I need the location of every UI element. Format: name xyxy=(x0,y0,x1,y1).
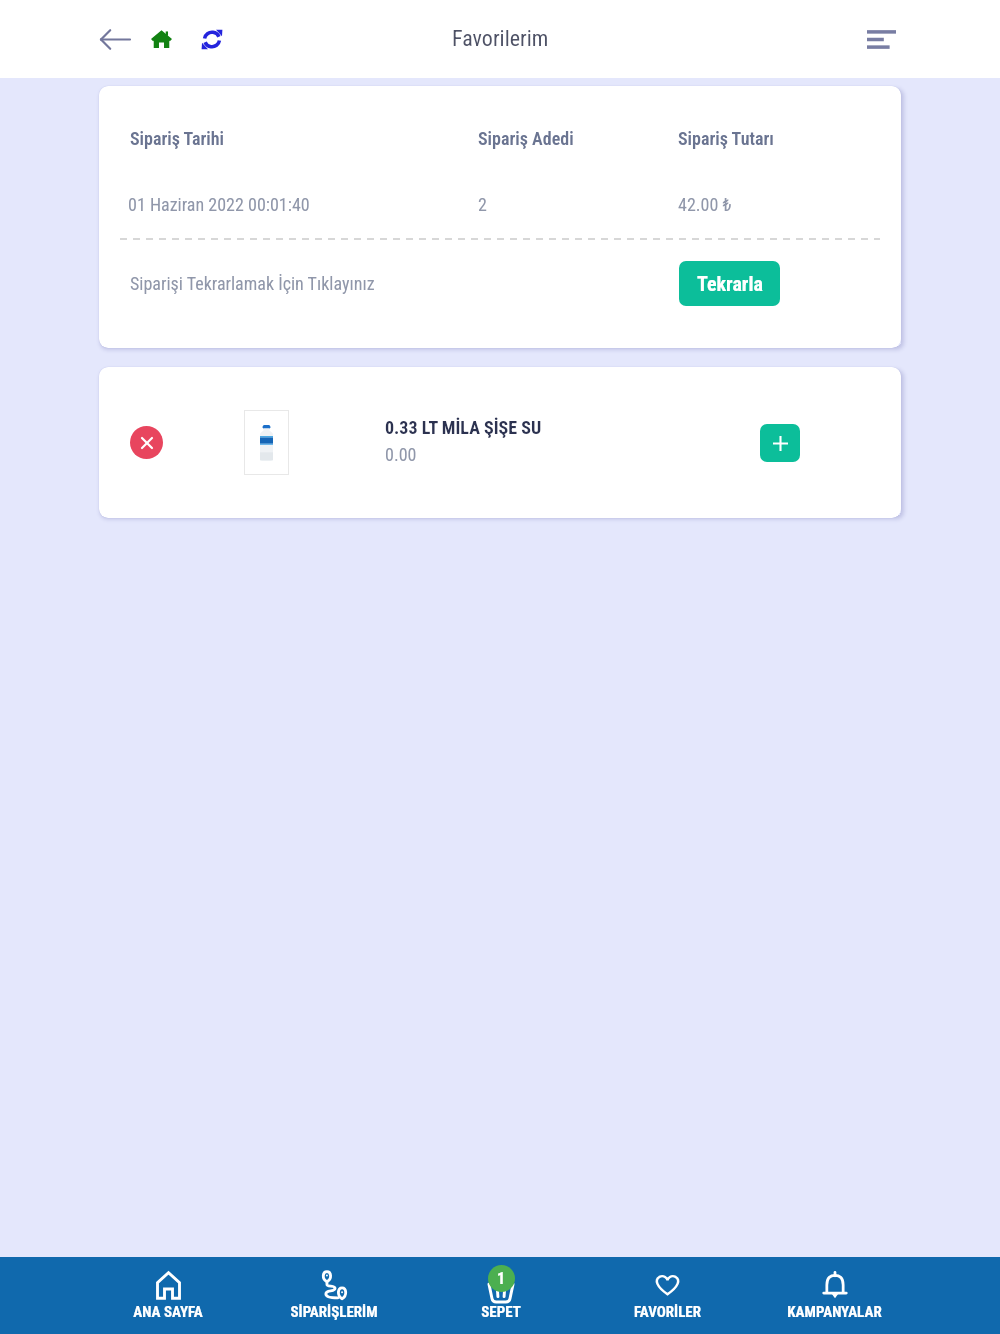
staticText: KAMPANYALAR xyxy=(787,1303,882,1321)
staticText: 1 xyxy=(497,1269,506,1288)
staticText: Favorilerim xyxy=(452,26,549,52)
button[interactable]: SİPARİŞLERİM xyxy=(251,1257,417,1334)
staticText: 42.00 ₺ xyxy=(678,194,732,215)
button[interactable]: Add to cart xyxy=(760,424,800,462)
staticText: Sipariş Adedi xyxy=(478,128,678,149)
staticText: 01 Haziran 2022 00:01:40 xyxy=(128,194,478,215)
staticText: 0.33 LT MİLA ŞİŞE SU xyxy=(385,417,542,438)
staticText: 0.00 xyxy=(385,444,417,465)
staticText: Sipariş Tutarı xyxy=(678,128,774,149)
staticText: Tekrarla xyxy=(697,272,763,295)
button[interactable]: KAMPANYALAR xyxy=(751,1257,918,1334)
button[interactable]: FAVORİLER xyxy=(584,1257,751,1334)
button[interactable]: 1 xyxy=(417,1257,584,1334)
button[interactable]: ANA SAYFA xyxy=(85,1257,251,1334)
staticText: SEPET xyxy=(481,1303,521,1321)
staticText: FAVORİLER xyxy=(634,1303,701,1321)
staticText: Siparişi Tekrarlamak İçin Tıklayınız xyxy=(130,273,375,294)
button[interactable]: Refresh xyxy=(192,19,232,59)
staticText: ANA SAYFA xyxy=(133,1303,203,1321)
staticText: SİPARİŞLERİM xyxy=(290,1303,378,1321)
button[interactable]: Menu xyxy=(859,17,903,61)
button[interactable]: Tekrarla xyxy=(679,261,780,306)
button[interactable]: Home xyxy=(141,19,181,59)
button[interactable]: Back xyxy=(90,14,140,64)
staticText: 2 xyxy=(478,194,678,215)
button[interactable]: Remove from favorites xyxy=(130,426,163,459)
staticText: Sipariş Tarihi xyxy=(130,128,478,149)
